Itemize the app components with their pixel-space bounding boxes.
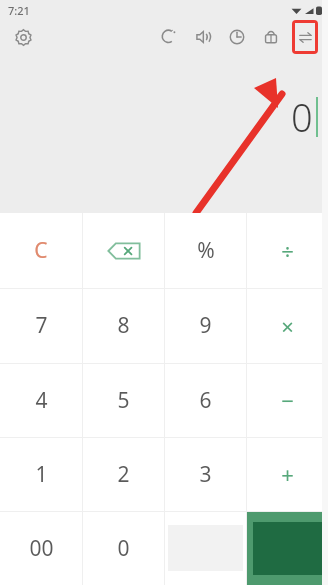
button[interactable]: Backspace	[83, 213, 164, 288]
button[interactable]: %	[165, 213, 246, 288]
button[interactable]	[165, 511, 246, 585]
staticText: 2	[117, 460, 130, 489]
button[interactable]	[247, 511, 328, 585]
staticText: +	[281, 459, 294, 489]
button[interactable]: 0	[83, 511, 164, 585]
staticText: 6	[199, 386, 212, 415]
button[interactable]: 3	[165, 437, 246, 511]
button[interactable]: 8	[83, 288, 164, 363]
button[interactable]: C	[0, 213, 82, 288]
staticText: C	[34, 236, 48, 265]
button[interactable]: Settings	[6, 20, 40, 54]
button[interactable]: ×	[247, 288, 328, 363]
staticText: 0	[291, 91, 313, 143]
staticText: −	[281, 385, 294, 415]
button[interactable]: Unit converter	[288, 20, 322, 54]
button[interactable]: 7	[0, 288, 82, 363]
button[interactable]: Night mode	[152, 20, 186, 54]
staticText: 7:21	[8, 3, 30, 18]
button[interactable]: History	[220, 20, 254, 54]
button[interactable]: +	[247, 437, 328, 511]
button[interactable]: Save	[254, 20, 288, 54]
button[interactable]: 6	[165, 363, 246, 437]
staticText: 8	[117, 311, 130, 340]
staticText: 0	[117, 534, 130, 563]
button[interactable]: 2	[83, 437, 164, 511]
staticText: %	[197, 236, 215, 265]
staticText: 3	[199, 460, 212, 489]
button[interactable]: 5	[83, 363, 164, 437]
button[interactable]: 1	[0, 437, 82, 511]
button[interactable]: Sound	[186, 20, 220, 54]
staticText: 9	[199, 311, 212, 340]
staticText: ÷	[281, 236, 294, 266]
button[interactable]: ÷	[247, 213, 328, 288]
staticText: 4	[35, 386, 48, 415]
button[interactable]: 9	[165, 288, 246, 363]
staticText: 7	[35, 311, 48, 340]
button[interactable]: 4	[0, 363, 82, 437]
staticText: 1	[35, 460, 48, 489]
button[interactable]: 00	[0, 511, 82, 585]
staticText: ×	[281, 311, 294, 341]
button[interactable]: −	[247, 363, 328, 437]
staticText: 5	[117, 386, 130, 415]
staticText: 00	[29, 534, 54, 563]
